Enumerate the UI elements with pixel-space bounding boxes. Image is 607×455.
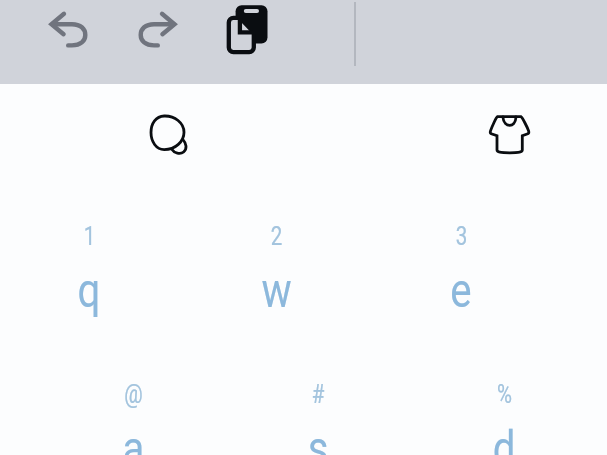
staticText: d: [492, 420, 515, 455]
staticText: w: [261, 262, 292, 319]
staticText: s: [307, 420, 329, 455]
button[interactable]: Clothing sticker: [485, 110, 533, 158]
staticText: %: [497, 380, 512, 409]
button[interactable]: Copy and paste: [222, 2, 272, 52]
button[interactable]: 3: [391, 222, 531, 380]
button[interactable]: %: [434, 380, 574, 455]
staticText: 3: [455, 222, 468, 251]
button[interactable]: Emoji and stickers: [144, 110, 192, 158]
button[interactable]: Redo: [133, 5, 181, 53]
staticText: a: [122, 420, 144, 455]
button[interactable]: 1: [19, 222, 159, 380]
staticText: #: [311, 380, 324, 409]
staticText: 1: [83, 222, 96, 251]
staticText: @: [124, 380, 143, 409]
button[interactable]: Undo: [45, 5, 93, 53]
staticText: e: [450, 262, 472, 319]
staticText: 2: [270, 222, 283, 251]
button[interactable]: #: [248, 380, 388, 455]
staticText: q: [77, 262, 100, 319]
button[interactable]: 2: [206, 222, 346, 380]
button[interactable]: @: [63, 380, 203, 455]
